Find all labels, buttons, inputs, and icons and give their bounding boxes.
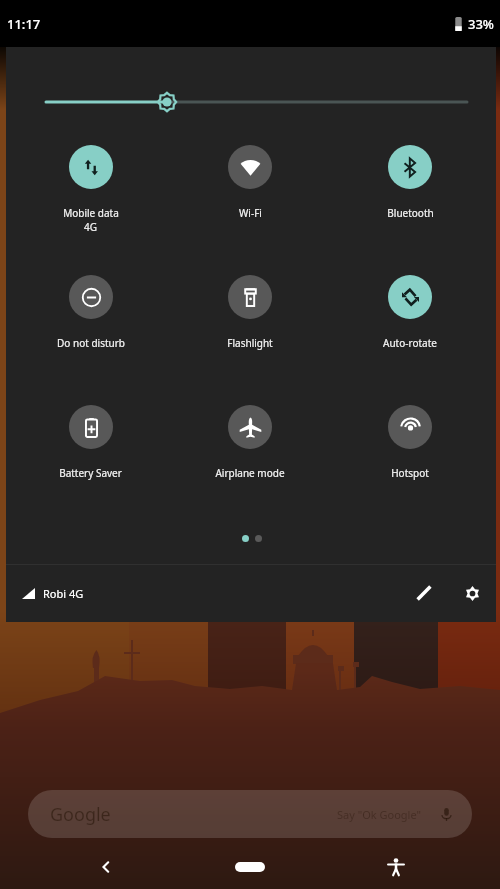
button[interactable]: Bluetooth: [330, 136, 490, 220]
staticText: 11:17: [7, 15, 41, 33]
button[interactable]: Robi 4G: [22, 578, 84, 609]
staticText: 33%: [468, 15, 494, 33]
staticText: Auto-rotate: [383, 336, 437, 350]
button[interactable]: Google: [28, 790, 472, 838]
staticText: Bluetooth: [387, 206, 434, 220]
staticText: Say "Ok Google": [337, 807, 421, 822]
staticText: Do not disturb: [57, 336, 125, 350]
staticText: Mobile data: [63, 206, 119, 220]
staticText: Flashlight: [227, 336, 273, 350]
staticText: Hotspot: [391, 466, 429, 480]
staticText: Battery Saver: [59, 466, 122, 480]
button[interactable]: Settings: [448, 569, 496, 617]
button[interactable]: Do not disturb: [11, 266, 170, 350]
button[interactable]: Edit: [400, 569, 448, 617]
button[interactable]: Flashlight: [170, 266, 330, 350]
staticText: Robi 4G: [43, 586, 84, 601]
button[interactable]: Accessibility: [376, 847, 416, 887]
button[interactable]: Wi-Fi: [170, 136, 330, 220]
staticText: Google: [50, 802, 111, 827]
button[interactable]: Battery Saver: [11, 396, 170, 480]
staticText: 4G: [84, 220, 97, 234]
staticText: Wi-Fi: [239, 206, 262, 220]
button[interactable]: Airplane mode: [170, 396, 330, 480]
button[interactable]: Hotspot: [330, 396, 490, 480]
button[interactable]: Home: [220, 852, 280, 882]
button[interactable]: Mobile data: [11, 136, 170, 234]
staticText: Airplane mode: [215, 466, 285, 480]
button[interactable]: Back: [86, 847, 126, 887]
button[interactable]: Auto-rotate: [330, 266, 490, 350]
